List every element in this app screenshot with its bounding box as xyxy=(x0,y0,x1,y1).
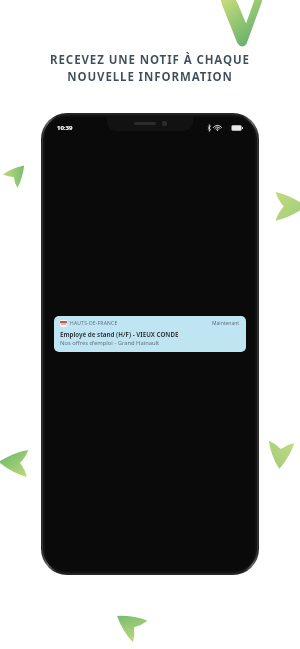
staticText: Nos offres d'emploi - Grand Hainault xyxy=(60,339,160,347)
button[interactable]: HAUTS-DE-FRANCE xyxy=(54,316,246,352)
staticText: HAUTS-DE-FRANCE xyxy=(70,320,118,327)
staticText: 10:39 xyxy=(57,124,73,132)
other: Aperçu du téléphone avec notification xyxy=(41,113,259,575)
staticText: Maintenant xyxy=(212,320,240,327)
staticText: Employé de stand (H/F) - VIEUX CONDE xyxy=(60,330,179,338)
staticText: RECEVEZ UNE NOTIF À CHAQUE NOUVELLE INFO… xyxy=(0,52,300,85)
